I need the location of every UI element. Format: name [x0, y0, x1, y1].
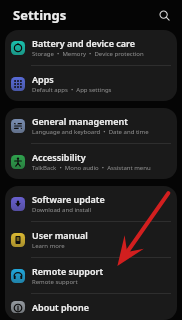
staticText: General management [32, 115, 128, 127]
staticText: Download and install [32, 206, 92, 214]
button[interactable]: Accessibility [5, 144, 177, 179]
staticText: Accessibility [32, 151, 86, 163]
staticText: TalkBack • Mono audio • Assistant menu [32, 164, 151, 172]
staticText: Settings [13, 6, 67, 24]
staticText: Apps [32, 73, 54, 85]
staticText: Learn more [32, 242, 65, 250]
button[interactable]: Remote support [5, 258, 177, 293]
button[interactable]: User manual [5, 222, 177, 257]
staticText: Software update [32, 193, 105, 205]
staticText: Remote support [32, 265, 104, 277]
button[interactable]: Search [154, 5, 174, 25]
staticText: Storage • Memory • Device protection [32, 50, 144, 58]
staticText: User manual [32, 229, 88, 241]
button[interactable]: Battery and device care [5, 30, 177, 65]
button[interactable]: Software update [5, 186, 177, 221]
staticText: About phone [32, 301, 89, 313]
button[interactable]: About phone [5, 294, 177, 320]
staticText: Default apps • App settings [32, 86, 112, 94]
staticText: Language and keyboard • Date and time [32, 128, 149, 136]
button[interactable]: Apps [5, 66, 177, 101]
staticText: Battery and device care [32, 37, 136, 49]
button[interactable]: General management [5, 108, 177, 143]
staticText: Remote support [32, 278, 78, 286]
